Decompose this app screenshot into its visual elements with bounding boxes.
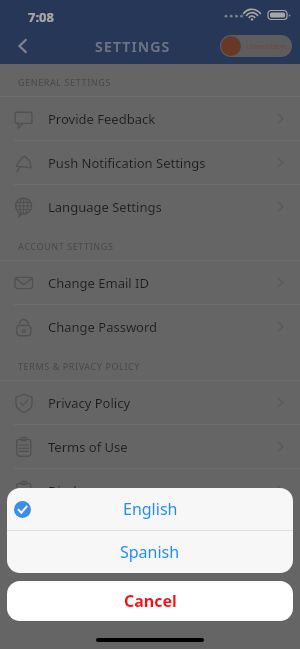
- staticText: Language Settings: [48, 198, 275, 216]
- button[interactable]: Cancel: [7, 581, 293, 621]
- button[interactable]: Provide Feedback: [0, 97, 300, 140]
- staticText: Change Email ID: [48, 274, 275, 292]
- button[interactable]: Change Email ID: [0, 261, 300, 304]
- staticText: 7:08: [28, 8, 54, 26]
- staticText: Change Password: [48, 318, 275, 336]
- staticText: Push Notification Settings: [48, 154, 275, 172]
- staticText: Disclosure: [48, 482, 275, 500]
- staticText: SETTINGS: [95, 37, 171, 56]
- staticText: Cancel: [124, 590, 177, 612]
- button[interactable]: English: [7, 488, 293, 530]
- button[interactable]: Spanish: [7, 531, 293, 573]
- staticText: ACCOUNT SETTINGS: [18, 240, 114, 252]
- staticText: TERMS & PRIVACY POLICY: [18, 360, 141, 372]
- button[interactable]: Privacy Policy: [0, 381, 300, 424]
- staticText: Spanish: [120, 541, 180, 563]
- button[interactable]: Push Notification Settings: [0, 141, 300, 184]
- button[interactable]: Change Password: [0, 305, 300, 348]
- button[interactable]: Terms of Use: [0, 425, 300, 468]
- staticText: English: [123, 498, 178, 520]
- button[interactable]: Back: [0, 28, 46, 64]
- staticText: Privacy Policy: [48, 394, 275, 412]
- staticText: Unavailable: [246, 41, 288, 51]
- staticText: GENERAL SETTINGS: [18, 76, 111, 88]
- button[interactable]: Unavailable: [220, 35, 292, 57]
- staticText: Terms of Use: [48, 438, 275, 456]
- button[interactable]: Disclosure: [0, 469, 300, 512]
- staticText: Provide Feedback: [48, 110, 275, 128]
- button[interactable]: Language Settings: [0, 185, 300, 228]
